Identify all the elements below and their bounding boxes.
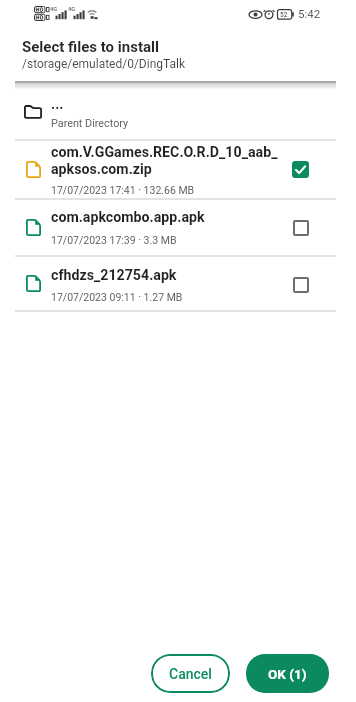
button[interactable]: OK (1): [246, 654, 329, 693]
staticText: 4G: [68, 6, 76, 13]
staticText: com.apkcombo.app.apk: [51, 209, 205, 226]
staticText: 17/07/2023 09:11 · 1.27 MB: [51, 291, 183, 303]
staticText: /storage/emulated/0/DingTalk: [22, 57, 186, 71]
staticText: ...: [51, 96, 64, 113]
staticText: 17/07/2023 17:41 · 132.66 MB: [51, 184, 195, 196]
staticText: 52: [280, 11, 288, 19]
staticText: OK (1): [268, 666, 307, 682]
button[interactable]: [293, 277, 309, 293]
staticText: Parent Directory: [51, 117, 129, 130]
staticText: 17/07/2023 17:39 · 3.3 MB: [51, 234, 177, 246]
button[interactable]: Cancel: [151, 654, 230, 693]
button[interactable]: cfhdzs_212754.apk: [0, 256, 356, 310]
staticText: 4G: [50, 6, 58, 13]
staticText: Cancel: [169, 666, 212, 682]
button[interactable]: com.V.GGames.REC.O.R.D_10_aab_ apksos.co…: [0, 139, 356, 198]
staticText: com.V.GGames.REC.O.R.D_10_aab_ apksos.co…: [51, 144, 278, 178]
staticText: Select files to install: [22, 38, 159, 56]
button[interactable]: ...: [0, 83, 356, 139]
staticText: cfhdzs_212754.apk: [51, 267, 177, 284]
staticText: 5:42: [298, 7, 321, 20]
button[interactable]: [292, 161, 309, 178]
button[interactable]: [293, 220, 309, 236]
button[interactable]: com.apkcombo.app.apk: [0, 198, 356, 256]
